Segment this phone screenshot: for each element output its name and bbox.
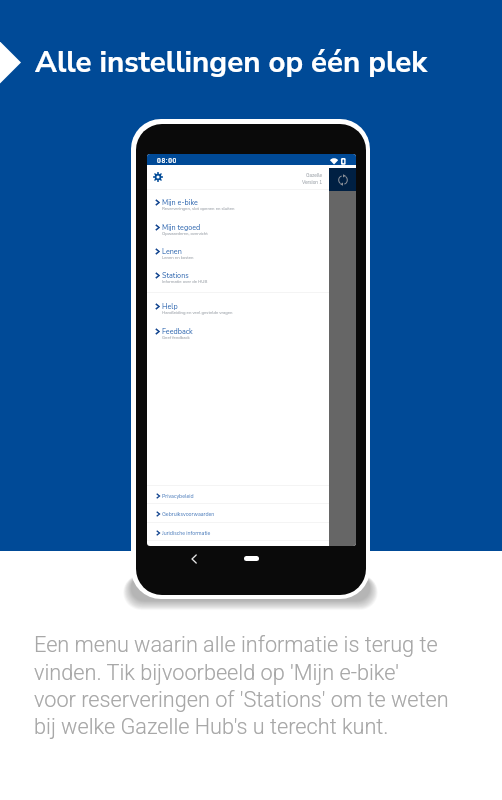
button[interactable]: Refresh (329, 168, 356, 191)
staticText: Alle instellingen op één plek (35, 42, 428, 82)
staticText: Stations (162, 271, 189, 281)
button[interactable]: Home (244, 556, 259, 561)
button[interactable]: Juridische informatie (147, 524, 329, 542)
button[interactable]: Settings (150, 169, 166, 185)
staticText: Een menu waarin alle informatie is terug… (34, 632, 449, 739)
staticText: Mijn tegoed (162, 223, 201, 233)
staticText: Feedback (162, 327, 193, 337)
staticText: Gazelle (306, 172, 323, 179)
staticText: 08:00 (157, 157, 177, 165)
staticText: Lenen en kosten (162, 255, 194, 261)
button[interactable]: Privacybeleid (147, 487, 329, 505)
button[interactable]: Back (186, 551, 202, 567)
staticText: Privacybeleid (162, 493, 194, 500)
button[interactable]: Feedback (147, 327, 329, 344)
button[interactable]: Mijn tegoed (147, 223, 329, 240)
staticText: Help (162, 302, 178, 312)
staticText: Informatie over de HUB (162, 279, 208, 285)
staticText: Juridische informatie (162, 530, 211, 537)
staticText: Gebruiksvoorwaarden (162, 511, 215, 518)
staticText: Opwaarderen, overzicht (162, 231, 208, 237)
staticText: Mijn e-bike (162, 198, 198, 208)
staticText: Geef feedback (162, 335, 190, 341)
button[interactable]: Lenen (147, 247, 329, 264)
button[interactable]: Mijn e-bike (147, 198, 329, 215)
staticText: Lenen (162, 247, 182, 257)
staticText: Reserveringen, slot openen en sluiten (162, 206, 235, 212)
button[interactable]: Gebruiksvoorwaarden (147, 505, 329, 523)
button[interactable]: Help (147, 302, 329, 319)
button[interactable]: Stations (147, 271, 329, 288)
staticText: Handleiding en veel gestelde vragen (162, 310, 233, 316)
staticText: Version 1 (302, 179, 323, 186)
